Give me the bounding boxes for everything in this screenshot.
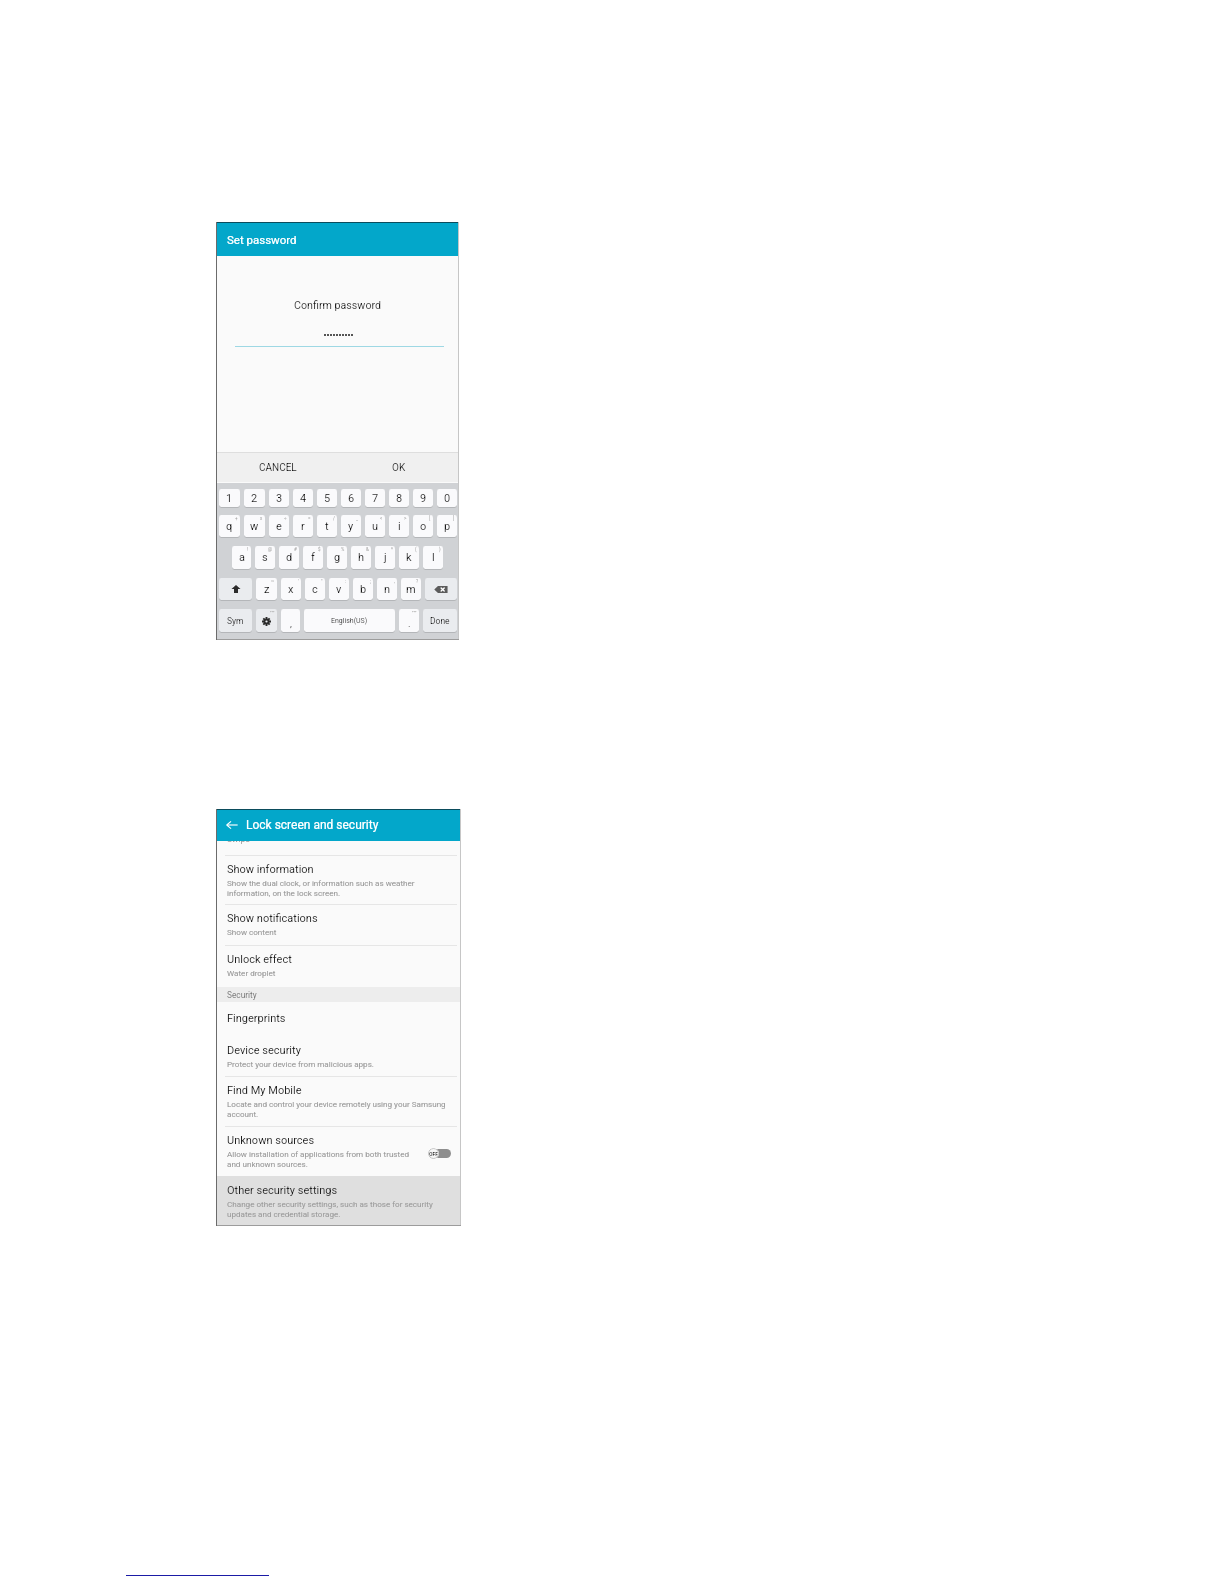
staticText: 8 xyxy=(396,492,403,505)
button[interactable]: a xyxy=(232,546,251,569)
staticText: p xyxy=(444,520,451,533)
button[interactable]: Sym xyxy=(219,609,252,632)
button[interactable]: Shift xyxy=(219,578,252,600)
button[interactable]: m xyxy=(401,578,421,600)
staticText: ' xyxy=(298,579,299,584)
button[interactable]: j xyxy=(375,546,395,569)
button[interactable]: 7 xyxy=(365,489,385,507)
staticText: # xyxy=(294,547,297,552)
staticText: ~ xyxy=(271,579,275,584)
button[interactable]: x xyxy=(281,578,301,600)
other: Backspace xyxy=(434,585,448,594)
staticText: i xyxy=(398,520,401,533)
button[interactable]: 8 xyxy=(389,489,409,507)
staticText: r xyxy=(301,520,305,533)
staticText: Swipe xyxy=(227,834,250,844)
button[interactable]: q xyxy=(219,515,240,537)
button[interactable]: 1 xyxy=(219,489,240,507)
button[interactable]: l xyxy=(423,546,443,569)
button[interactable]: 3 xyxy=(269,489,289,507)
button[interactable]: w xyxy=(244,515,265,537)
button[interactable]: k xyxy=(399,546,419,569)
staticText: Water droplet xyxy=(227,968,276,977)
button[interactable]: g xyxy=(327,546,347,569)
button[interactable]: r xyxy=(293,515,313,537)
button[interactable]: b xyxy=(353,578,373,600)
staticText: Sym xyxy=(227,616,244,626)
staticText: x xyxy=(260,516,263,521)
button[interactable]: v xyxy=(329,578,349,600)
button[interactable]: , xyxy=(281,609,300,632)
button[interactable]: Backspace xyxy=(425,578,457,600)
staticText: Show content xyxy=(227,927,277,936)
button[interactable]: d xyxy=(279,546,299,569)
staticText: Show information xyxy=(227,863,314,876)
button[interactable]: 5 xyxy=(317,489,337,507)
button[interactable]: Swipe xyxy=(217,841,461,854)
staticText: t xyxy=(325,520,329,533)
button[interactable]: . xyxy=(399,609,419,632)
staticText: ? xyxy=(416,579,419,584)
staticText: Show the dual clock, or information such… xyxy=(227,878,415,898)
button[interactable]: z xyxy=(256,578,277,600)
button[interactable]: h xyxy=(351,546,371,569)
staticText: ••• xyxy=(412,610,417,615)
staticText: w xyxy=(250,520,259,533)
button[interactable]: Keyboard settings xyxy=(256,609,277,632)
staticText: . xyxy=(408,618,411,629)
button[interactable]: 2 xyxy=(244,489,265,507)
button[interactable]: u xyxy=(365,515,385,537)
staticText: _ xyxy=(356,516,359,521)
button[interactable]: e xyxy=(269,515,289,537)
button[interactable]: i xyxy=(389,515,409,537)
staticText: Locate and control your device remotely … xyxy=(227,1099,446,1119)
staticText: , xyxy=(290,618,292,629)
button[interactable]: Device security xyxy=(217,1044,461,1068)
button[interactable]: Unknown sources xyxy=(217,1134,461,1175)
staticText: Other security settings xyxy=(227,1184,338,1197)
button[interactable]: CANCEL xyxy=(217,453,338,482)
staticText: Lock screen and security xyxy=(246,818,379,832)
button[interactable]: p xyxy=(437,515,457,537)
button[interactable]: 4 xyxy=(293,489,313,507)
staticText: : xyxy=(345,579,347,584)
button[interactable]: Show information xyxy=(217,863,461,898)
button[interactable]: Back xyxy=(217,809,461,841)
button[interactable]: n xyxy=(377,578,397,600)
staticText: = xyxy=(308,516,311,521)
staticText: > xyxy=(404,516,407,521)
staticText: OK xyxy=(392,462,406,474)
button[interactable]: o xyxy=(413,515,433,537)
staticText: , xyxy=(394,579,395,584)
staticText: m xyxy=(406,583,416,596)
button[interactable]: 9 xyxy=(413,489,433,507)
staticText: + xyxy=(235,516,238,521)
button[interactable]: Done xyxy=(423,609,457,632)
button[interactable]: English(US) xyxy=(304,609,395,632)
button[interactable]: Show notifications xyxy=(217,912,461,936)
staticText: a xyxy=(239,551,245,564)
button[interactable]: t xyxy=(317,515,337,537)
staticText: ; xyxy=(370,579,371,584)
button[interactable]: c xyxy=(305,578,325,600)
staticText: / xyxy=(333,516,335,521)
button[interactable]: y xyxy=(341,515,361,537)
button[interactable]: Unlock effect xyxy=(217,953,461,977)
button[interactable]: Unknown sources switch, off xyxy=(428,1148,450,1159)
staticText: Fingerprints xyxy=(227,1012,286,1025)
button[interactable]: f xyxy=(303,546,323,569)
button[interactable]: Back xyxy=(224,817,240,833)
button[interactable]: Fingerprints xyxy=(217,1012,461,1025)
staticText: ••• xyxy=(270,610,275,615)
staticText: Security xyxy=(227,990,257,1000)
button[interactable]: OK xyxy=(338,453,459,482)
button[interactable]: Find My Mobile xyxy=(217,1084,461,1119)
button[interactable]: 0 xyxy=(437,489,457,507)
staticText: Unlock effect xyxy=(227,953,292,966)
button[interactable]: Set password xyxy=(217,222,459,256)
button[interactable]: Other security settings xyxy=(217,1176,461,1226)
staticText: [ xyxy=(429,516,431,521)
staticText: z xyxy=(264,583,270,596)
button[interactable]: 6 xyxy=(341,489,361,507)
button[interactable]: s xyxy=(255,546,275,569)
